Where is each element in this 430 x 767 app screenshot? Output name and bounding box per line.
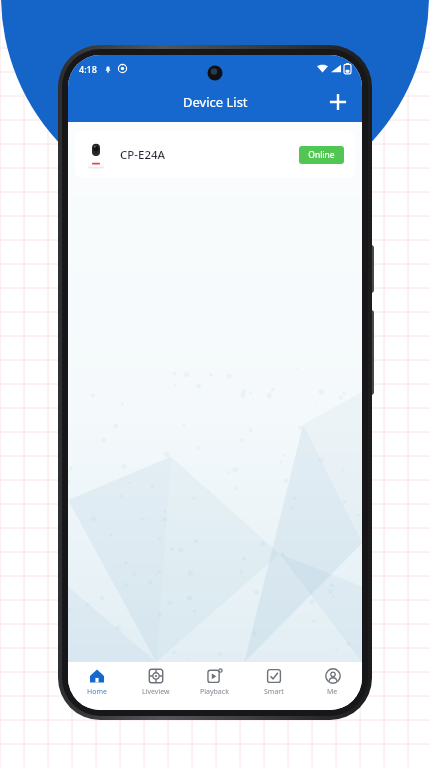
staticText: Device List	[183, 93, 248, 111]
button[interactable]: Liveview	[126, 662, 185, 710]
staticText: CP-E24A	[120, 147, 166, 163]
staticText: Online	[308, 149, 335, 161]
staticText: Liveview	[142, 687, 170, 697]
button[interactable]: Smart	[244, 662, 303, 710]
button[interactable]: Playback	[185, 662, 244, 710]
staticText: 4:18	[79, 63, 97, 75]
staticText: Playback	[200, 687, 229, 697]
staticText: Me	[327, 687, 338, 697]
button[interactable]: CP-E24A	[75, 131, 355, 178]
staticText: Home	[87, 687, 107, 697]
staticText: Smart	[264, 687, 284, 697]
button[interactable]: Me	[303, 662, 362, 710]
button[interactable]: Home	[68, 662, 126, 710]
button[interactable]: Add device	[320, 84, 356, 120]
